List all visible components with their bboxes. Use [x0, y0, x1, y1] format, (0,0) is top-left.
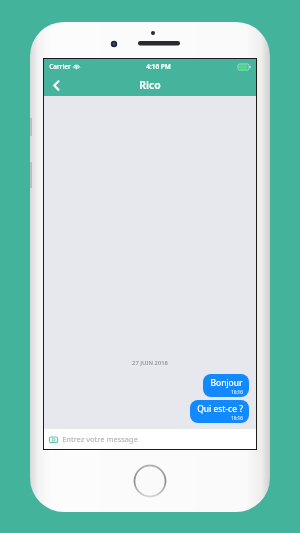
staticText: Carrier: [49, 62, 71, 71]
staticText: 16:16: [231, 389, 243, 395]
staticText: Bonjour: [210, 377, 243, 389]
button[interactable]: Bonjour: [203, 374, 249, 397]
staticText: Qui est-ce ?: [197, 403, 243, 415]
button[interactable]: Back: [44, 74, 68, 96]
other: Camera: [49, 435, 58, 444]
button[interactable]: Camera: [44, 429, 256, 449]
staticText: Entrez votre message: [62, 434, 138, 444]
staticText: 16:16: [231, 415, 243, 421]
staticText: Rico: [139, 78, 161, 92]
button[interactable]: Qui est-ce ?: [190, 400, 249, 423]
staticText: 4:16 PM: [146, 62, 171, 71]
staticText: 27 JUIN 2018: [132, 359, 168, 367]
